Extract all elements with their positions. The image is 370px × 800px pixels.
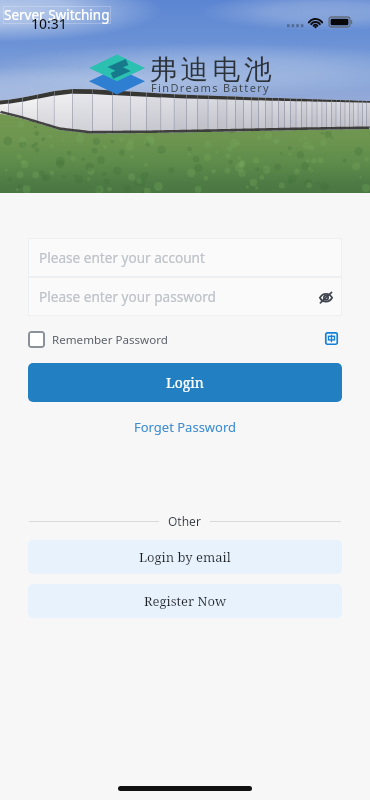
staticText: Server Switching <box>4 6 110 24</box>
staticText: 弗迪电池 <box>149 53 276 88</box>
button[interactable]: Forget Password <box>128 412 243 442</box>
button[interactable]: Please enter your account <box>28 238 342 277</box>
staticText: Forget Password <box>134 418 237 436</box>
button[interactable]: Remember Password <box>28 331 168 348</box>
button[interactable]: Server Switching <box>3 6 111 24</box>
button[interactable]: Show password <box>315 286 337 308</box>
button[interactable]: Login <box>28 363 342 402</box>
staticText: Please enter your password <box>39 287 216 306</box>
button[interactable]: Please enter your password <box>28 277 342 316</box>
staticText: Other <box>168 513 201 529</box>
staticText: 10:31 <box>31 14 67 33</box>
staticText: Remember Password <box>52 332 168 348</box>
staticText: Login <box>166 373 204 392</box>
staticText: Please enter your account <box>39 248 205 267</box>
button[interactable]: Switch language <box>323 330 339 346</box>
button[interactable]: Register Now <box>28 584 342 618</box>
staticText: FinDreams Battery <box>151 80 271 95</box>
staticText: Login by email <box>139 548 231 566</box>
staticText: Register Now <box>144 592 227 610</box>
button[interactable]: Login by email <box>28 540 342 574</box>
